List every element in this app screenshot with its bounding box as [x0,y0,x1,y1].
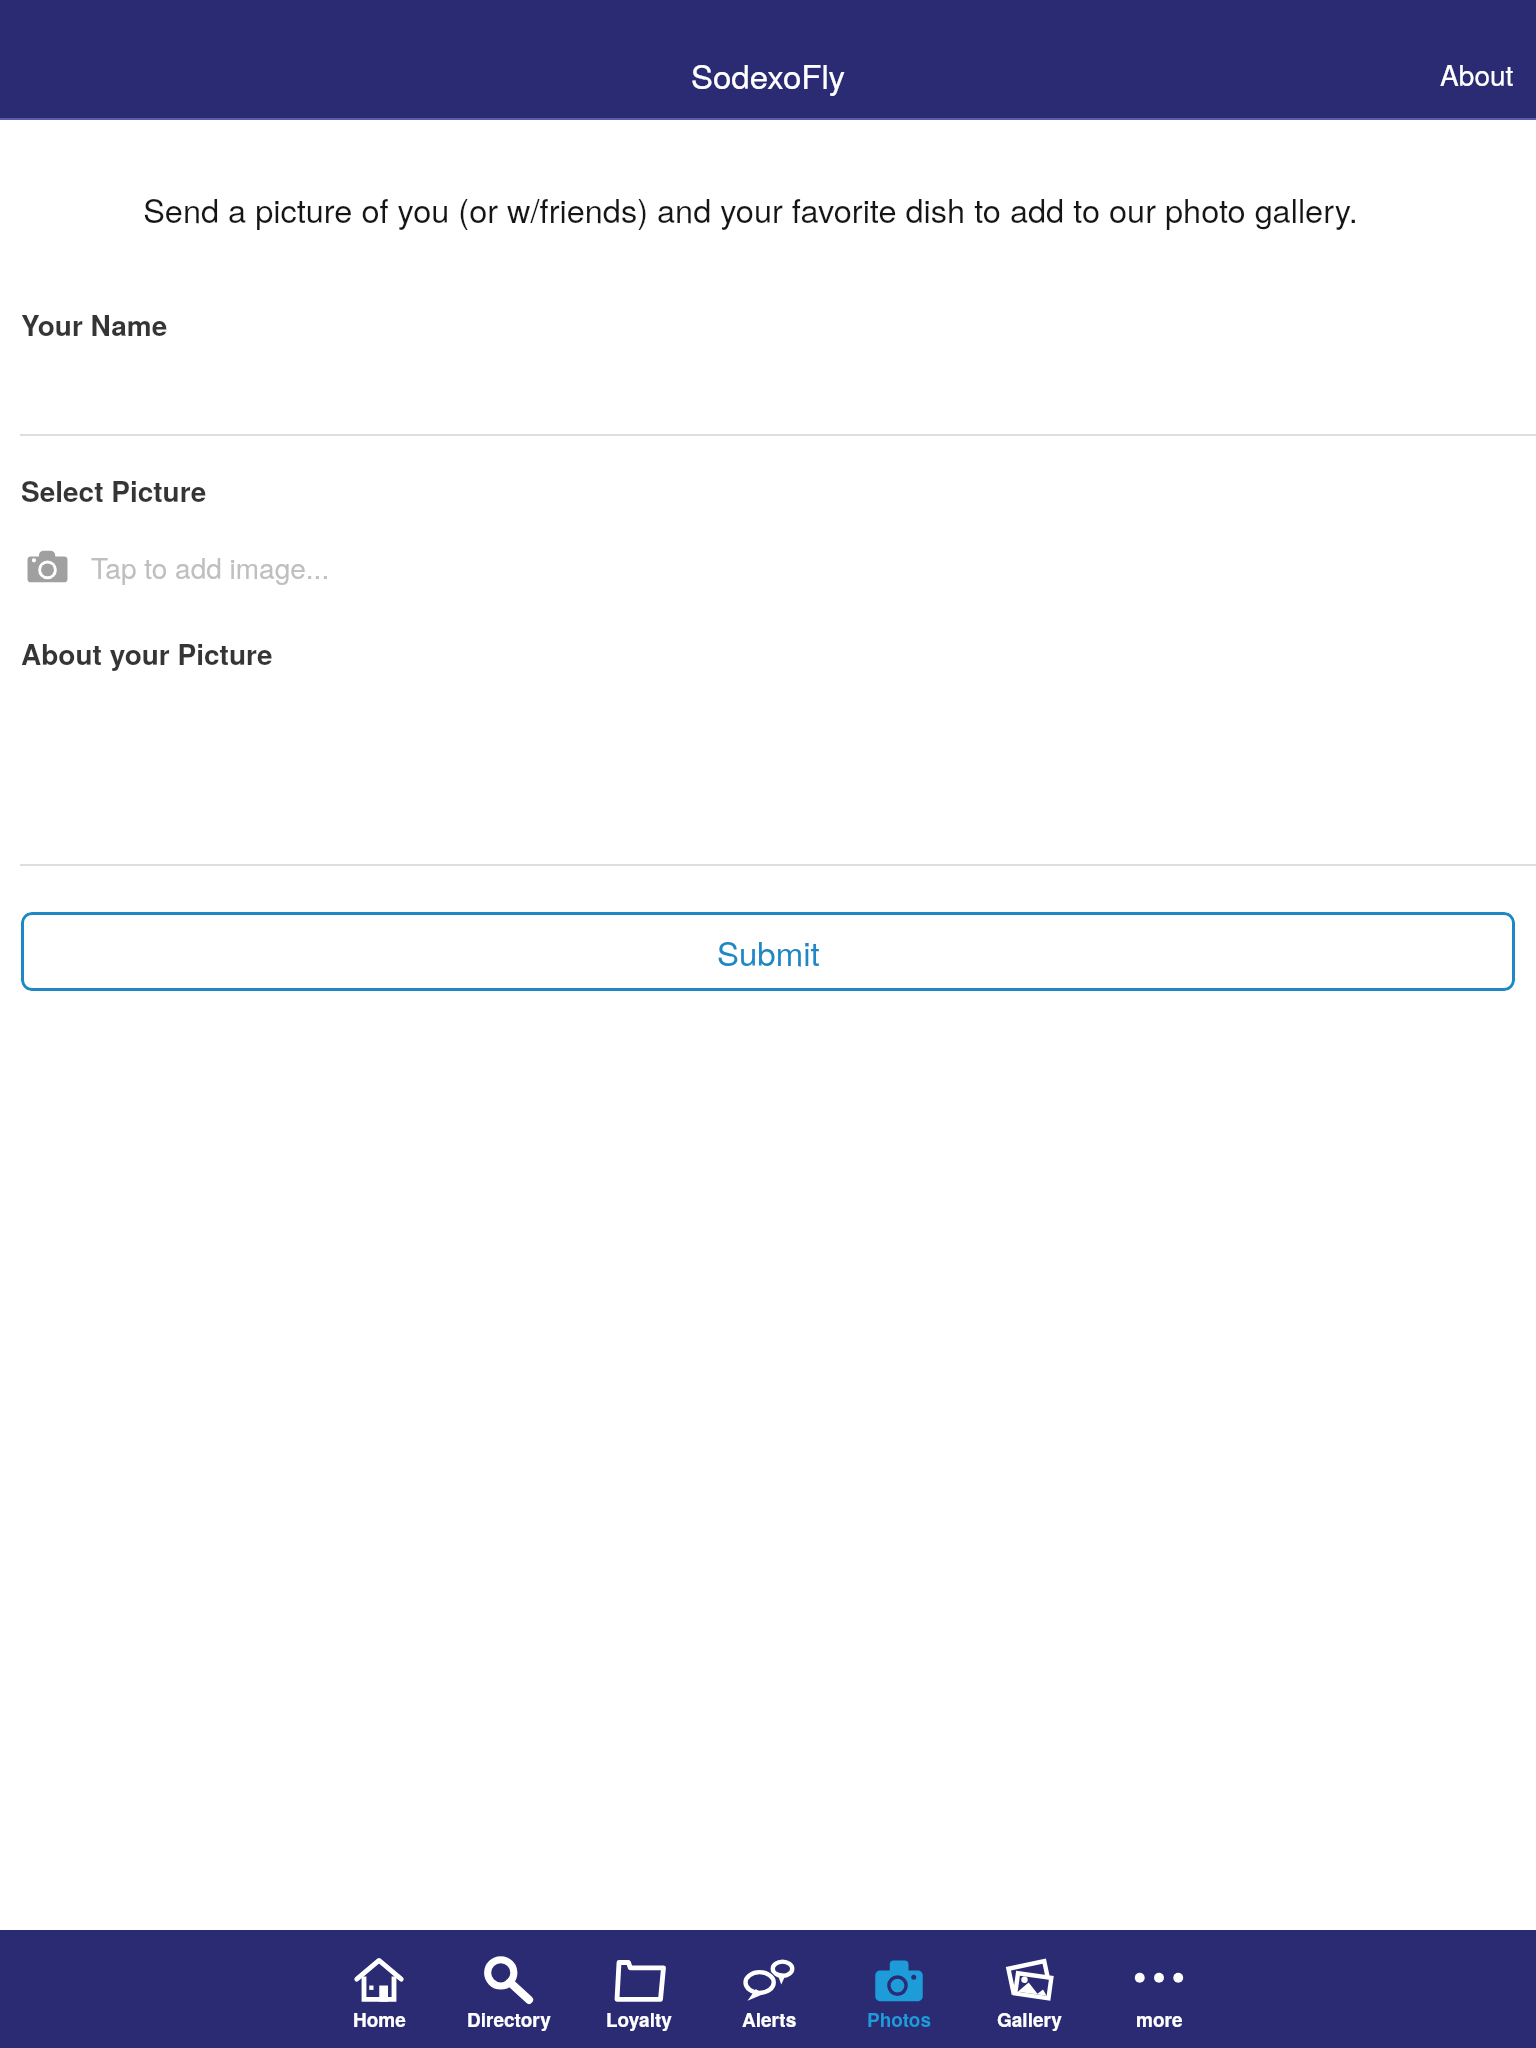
button[interactable]: About [1412,40,1536,108]
staticText: Loyalty [606,2006,672,2033]
staticText: SodexoFly [691,51,846,98]
other: Gallery [1004,1957,1054,2003]
button[interactable]: Directory [444,1930,574,2048]
button[interactable]: Alerts [704,1930,834,2048]
other: more [1134,1957,1184,2003]
button[interactable]: Add image [0,537,1536,597]
button[interactable]: Loyalty [574,1930,704,2048]
other: Home [354,1957,404,2003]
staticText: more [1136,2006,1183,2033]
button[interactable]: more [1094,1930,1224,2048]
staticText: Tap to add image... [91,547,330,587]
staticText: Directory [467,2006,551,2033]
staticText: Home [353,2006,406,2033]
staticText: Gallery [997,2006,1062,2033]
other: Photos [874,1957,924,2003]
button[interactable]: Submit [21,912,1515,991]
staticText: Photos [867,2006,932,2033]
button[interactable]: Photos [834,1930,964,2048]
staticText: Send a picture of you (or w/friends) and… [16,186,1485,233]
other: Loyalty [614,1957,664,2003]
button[interactable]: Home [314,1930,444,2048]
staticText: Select Picture [21,470,207,510]
button[interactable]: Gallery [964,1930,1094,2048]
other: Alerts [744,1957,794,2003]
staticText: Submit [717,928,820,975]
staticText: About [1440,54,1514,94]
staticText: Your Name [21,304,168,344]
other: Add image [26,550,69,584]
staticText: About your Picture [21,633,273,673]
staticText: Alerts [742,2006,797,2033]
other: Directory [484,1957,534,2003]
